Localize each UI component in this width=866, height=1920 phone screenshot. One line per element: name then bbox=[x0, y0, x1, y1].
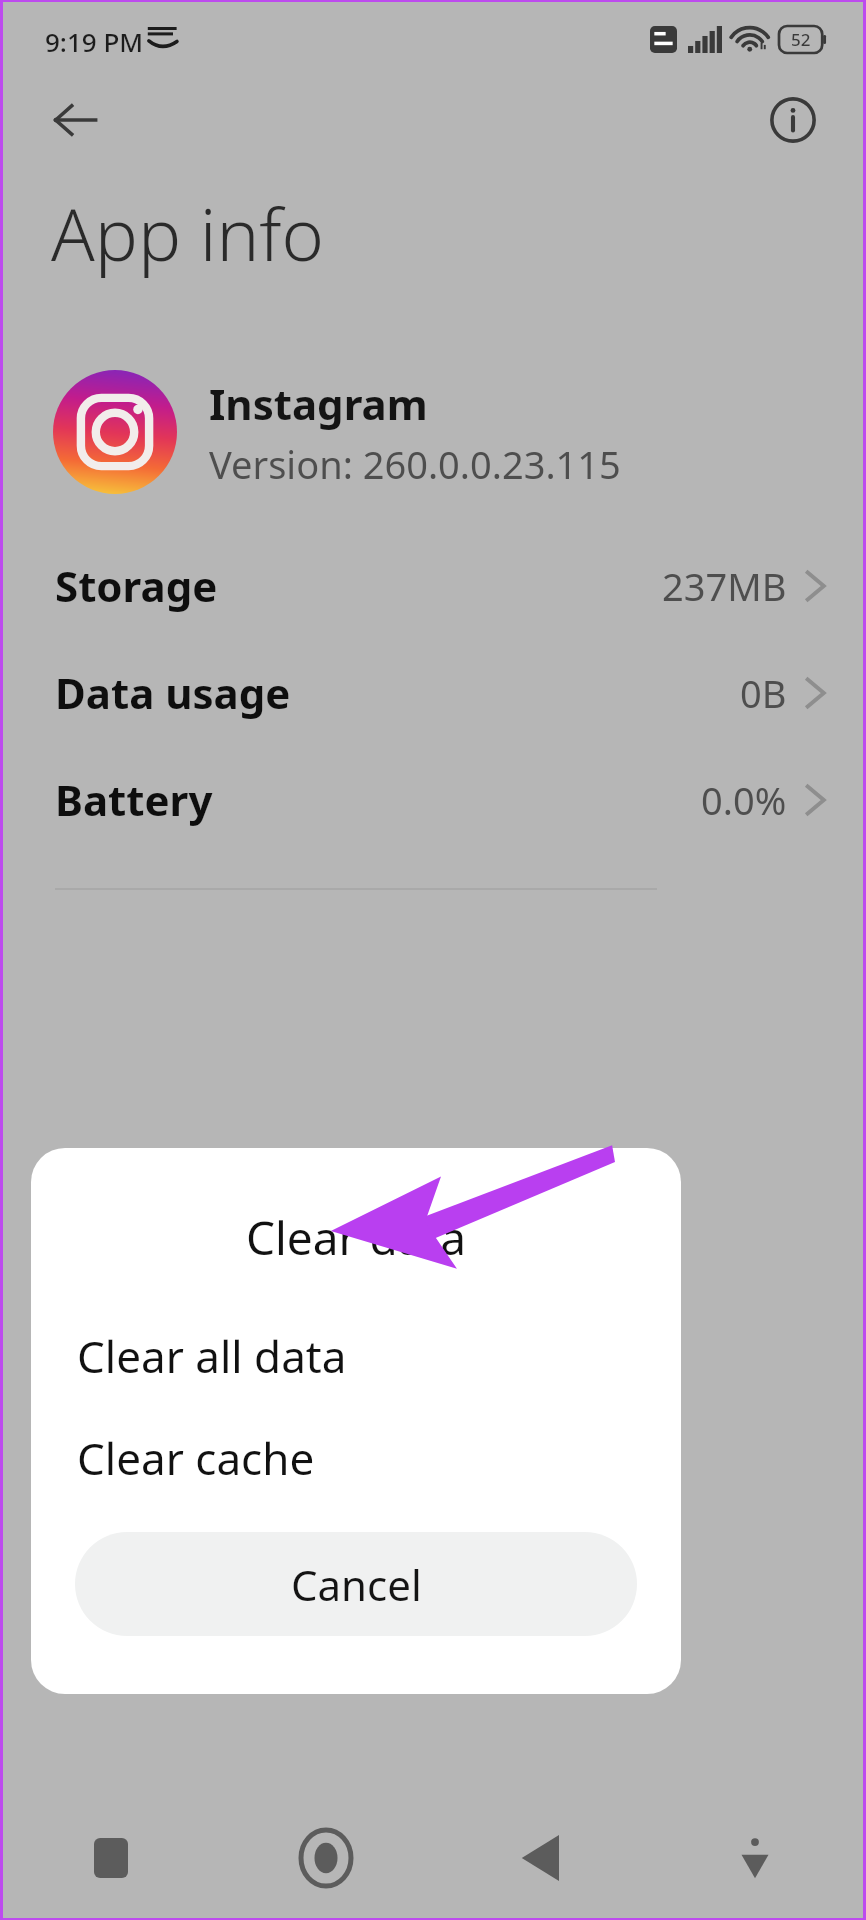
button[interactable]: Battery bbox=[3, 746, 863, 853]
button[interactable]: Home bbox=[278, 1810, 374, 1906]
staticText: App info bbox=[51, 184, 325, 282]
button[interactable]: Back bbox=[492, 1810, 588, 1906]
staticText: 0B bbox=[740, 667, 787, 719]
staticText: 0.0% bbox=[701, 774, 787, 826]
staticText: Version: 260.0.0.23.115 bbox=[209, 438, 621, 490]
button[interactable]: Clear all data bbox=[31, 1308, 681, 1404]
button[interactable]: App information bbox=[753, 80, 833, 160]
button[interactable]: Cancel bbox=[75, 1532, 637, 1636]
staticText: Instagram bbox=[209, 375, 428, 432]
staticText: Clear cache bbox=[77, 1428, 315, 1488]
staticText: Storage bbox=[55, 557, 218, 614]
staticText: Clear data bbox=[31, 1206, 681, 1269]
staticText: Clear all data bbox=[77, 1326, 347, 1386]
staticText: Cancel bbox=[291, 1556, 422, 1613]
staticText: Data usage bbox=[55, 664, 291, 721]
staticText: Battery bbox=[55, 771, 213, 828]
button[interactable]: Data usage bbox=[3, 639, 863, 746]
button[interactable]: Hide keyboard bbox=[707, 1810, 803, 1906]
staticText: 237MB bbox=[662, 560, 787, 612]
button[interactable]: Back bbox=[35, 80, 115, 160]
button[interactable]: Clear cache bbox=[31, 1410, 681, 1506]
staticText: 52 bbox=[791, 28, 811, 51]
button[interactable]: Storage bbox=[3, 532, 863, 639]
button[interactable]: Recent apps bbox=[63, 1810, 159, 1906]
staticText: 9:19 PM bbox=[45, 24, 144, 59]
